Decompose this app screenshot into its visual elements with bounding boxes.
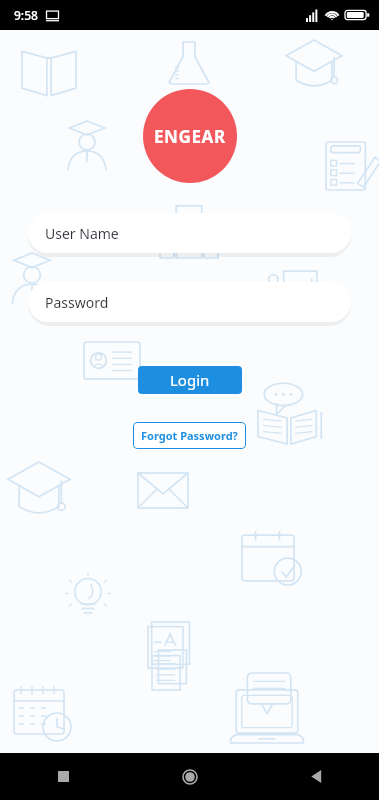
staticText: 9:58	[14, 7, 38, 23]
button[interactable]: Forgot Password?	[133, 422, 246, 449]
button[interactable]: Password	[28, 282, 351, 322]
staticText: ENGEAR	[154, 125, 226, 148]
staticText: Password	[45, 293, 109, 312]
button[interactable]: Login	[138, 366, 242, 394]
button[interactable]: Back	[253, 753, 379, 800]
button[interactable]: Recents	[0, 753, 127, 800]
button[interactable]: Home	[127, 753, 253, 800]
staticText: User Name	[45, 224, 119, 243]
staticText: Login	[170, 370, 210, 390]
staticText: Forgot Password?	[141, 428, 238, 443]
button[interactable]: User Name	[28, 213, 351, 253]
